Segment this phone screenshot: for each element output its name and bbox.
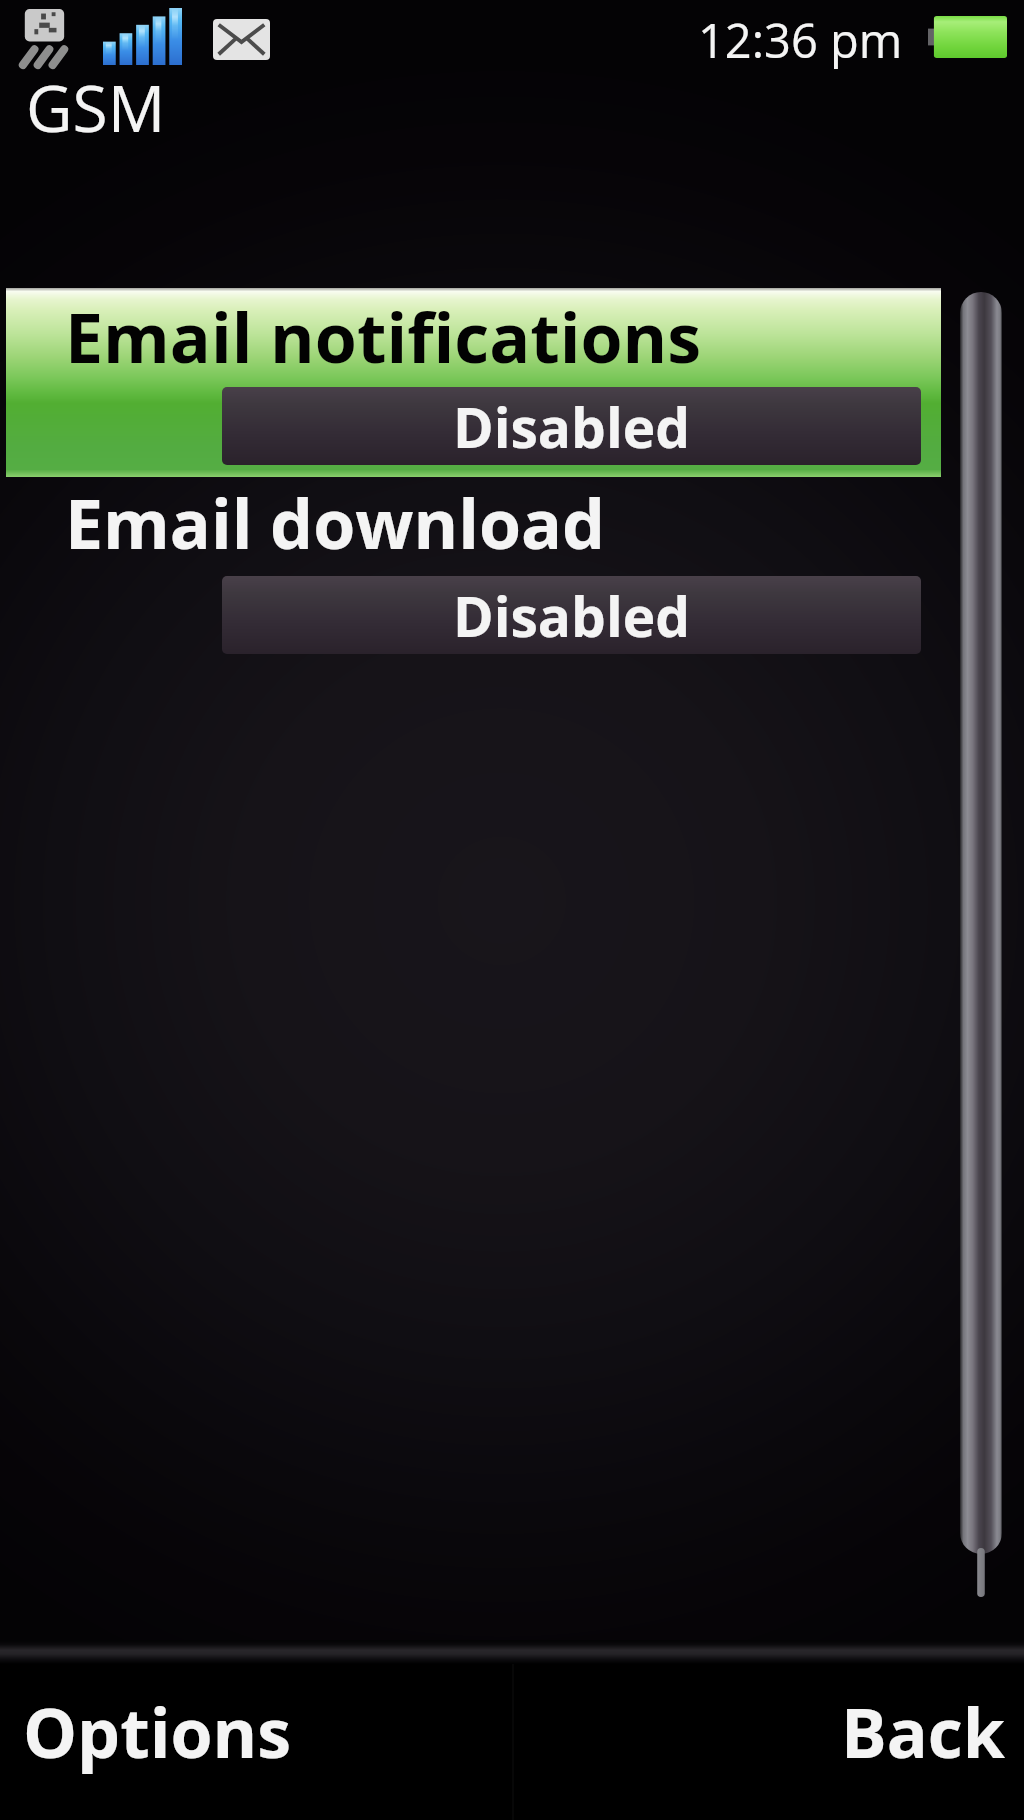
staticText: Disabled [453,389,690,464]
other: Battery full [928,16,1007,58]
other: Signal strength [103,8,182,65]
other: Keypad locked [20,9,68,65]
button[interactable]: Email download [6,477,941,666]
staticText: GSM [26,64,166,151]
button[interactable]: Options [0,1664,512,1820]
other: New message [213,19,270,60]
button[interactable]: Email notifications [6,288,941,477]
staticText: Options [23,1685,292,1778]
button[interactable]: Back [512,1664,1024,1820]
staticText: 12:36 pm [698,8,903,72]
staticText: Disabled [453,578,690,653]
staticText: Back [841,1685,1005,1778]
staticText: Email notifications [65,290,702,383]
staticText: Email download [65,476,606,569]
